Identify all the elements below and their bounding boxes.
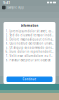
staticText: 6. Irure dolor in reprehenderit in volup… — [5, 50, 53, 54]
staticText: 9:41 — [3, 0, 10, 5]
staticText: Continue — [22, 77, 36, 81]
staticText: 3. Dolore magna aliqua ut enim ad minim … — [5, 38, 53, 41]
staticText: Example App — [7, 6, 24, 9]
staticText: 1. Lorem ipsum dolor sit amet, consectet… — [5, 29, 53, 33]
staticText: Information — [20, 24, 38, 27]
staticText: 7. Velit esse cillum dolore eu fugiat nu… — [5, 54, 53, 58]
staticText: 2. Sed do eiusmod tempor incididunt ut l… — [5, 33, 53, 37]
staticText: 5. Ut aliquip ex ea commodo consequat du… — [5, 46, 53, 49]
button[interactable]: Example App — [0, 5, 59, 10]
staticText: 8. Pariatur excepteur sint occaecat — [5, 58, 50, 62]
staticText: 4. Quis nostrud exercitation ullamco lab… — [5, 42, 53, 45]
button[interactable]: Continue — [6, 76, 52, 82]
